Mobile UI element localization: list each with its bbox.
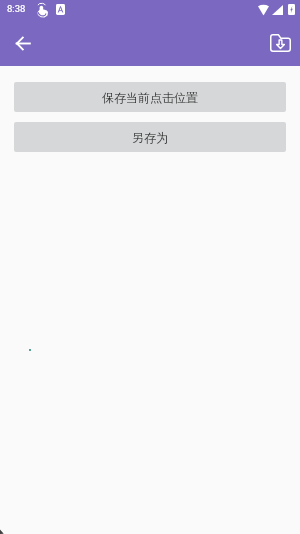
staticText: 另存为 xyxy=(132,130,168,145)
staticText: 保存当前点击位置 xyxy=(102,90,198,105)
button[interactable]: Save to folder xyxy=(264,27,296,59)
staticText: 8:38 xyxy=(7,3,26,14)
button[interactable]: Back xyxy=(7,27,39,59)
button[interactable]: 保存当前点击位置 xyxy=(14,82,286,112)
button[interactable]: 另存为 xyxy=(14,122,286,152)
